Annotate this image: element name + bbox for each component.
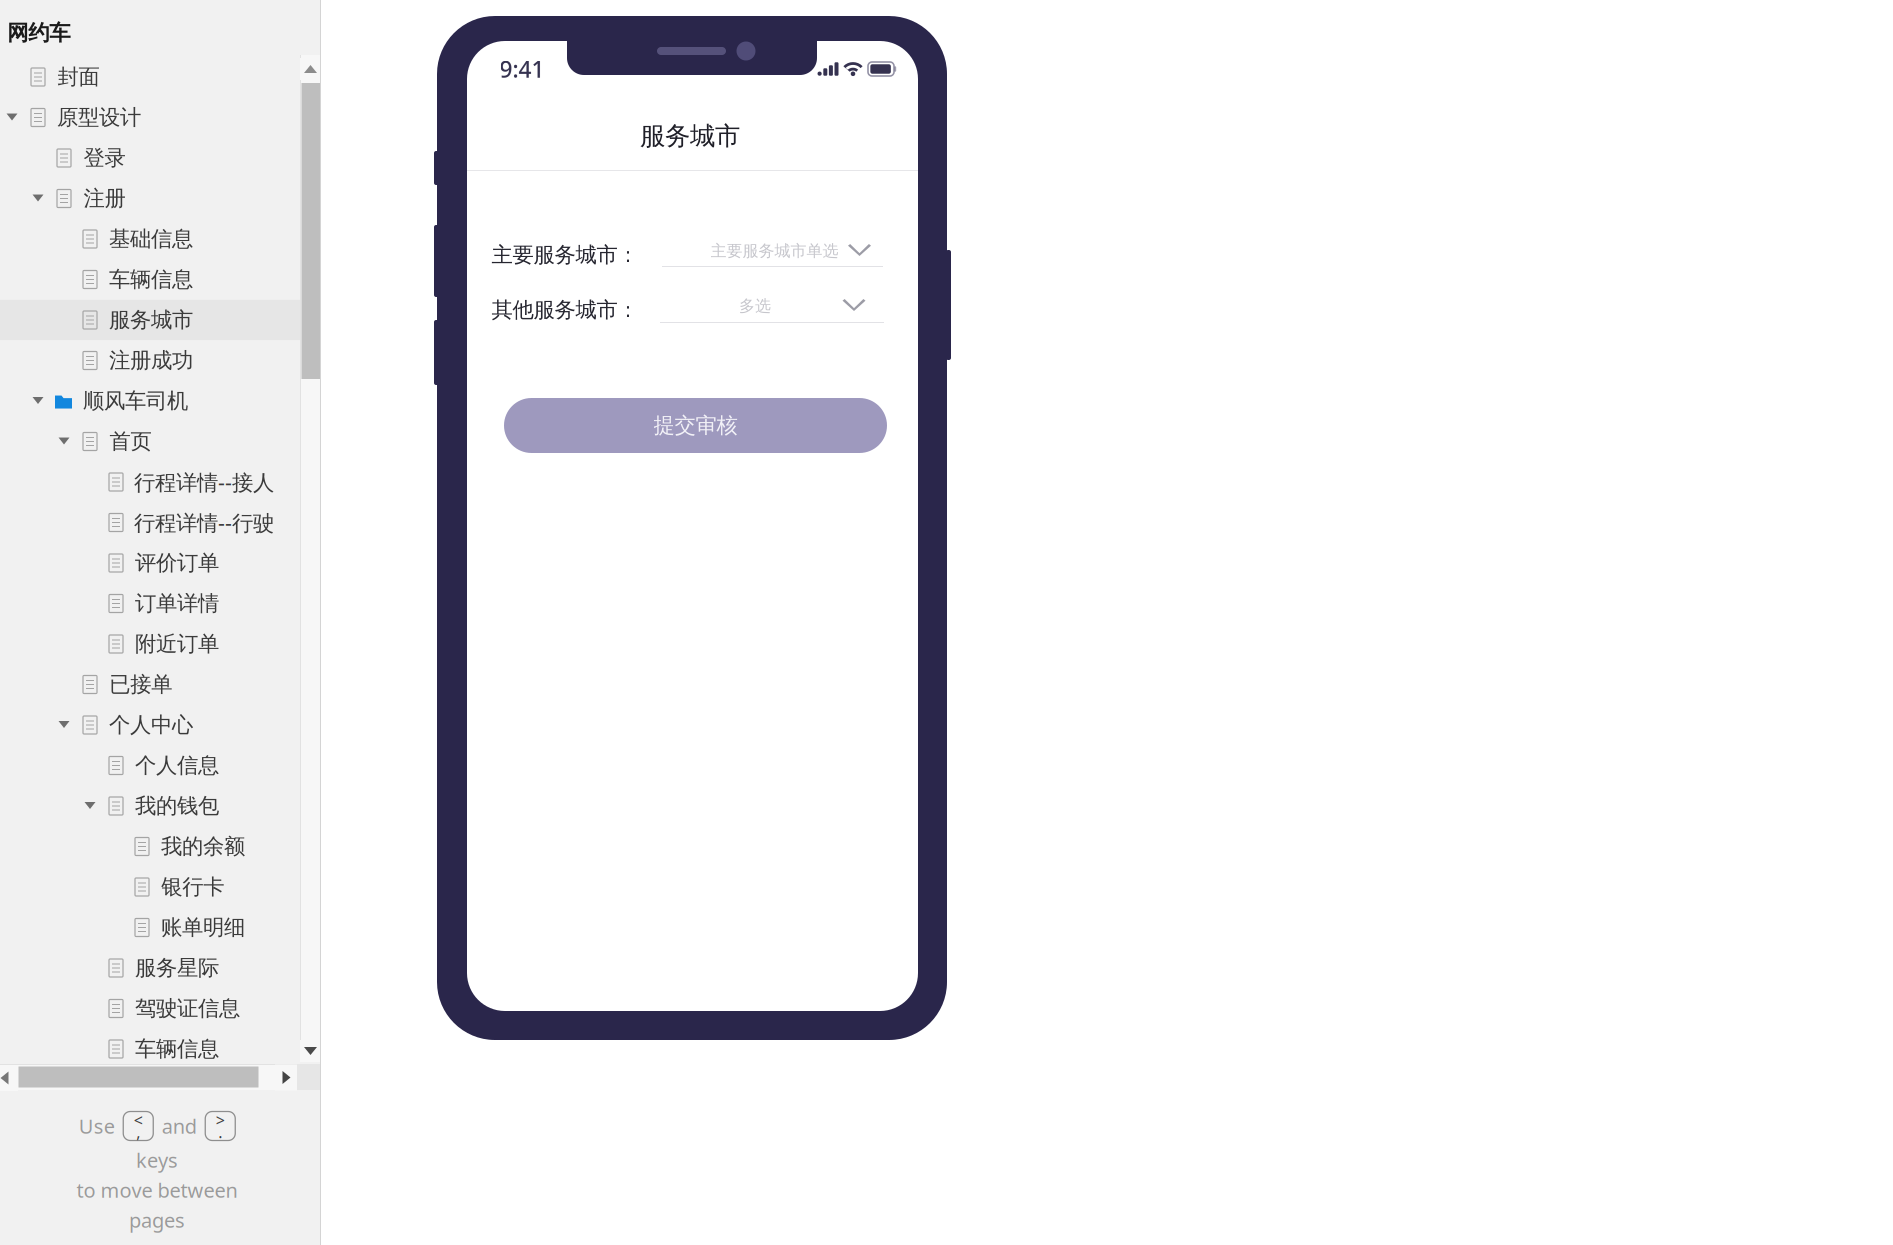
staticText: 原型设计 (57, 104, 141, 131)
button[interactable]: Scroll right (275, 1064, 297, 1090)
staticText: 服务星际 (135, 955, 219, 981)
staticText: 服务城市 (640, 120, 740, 151)
staticText: 订单详情 (135, 590, 219, 617)
staticText: > (216, 1109, 225, 1131)
staticText: 注册 (84, 185, 126, 212)
staticText: 车辆信息 (109, 266, 193, 293)
button[interactable]: 车辆信息 (0, 1029, 321, 1069)
staticText: 注册成功 (109, 347, 193, 374)
button[interactable]: 服务星际 (0, 948, 321, 988)
button[interactable]: 账单明细 (0, 907, 321, 948)
staticText: 多选 (739, 296, 771, 316)
button[interactable]: 我的钱包 (0, 786, 321, 826)
staticText: 驾驶证信息 (135, 995, 240, 1022)
button[interactable]: 注册 (0, 178, 321, 219)
button[interactable]: 附近订单 (0, 624, 321, 664)
staticText: 附近订单 (135, 631, 219, 657)
staticText: 个人中心 (109, 712, 193, 738)
button[interactable]: 多选 (660, 301, 884, 345)
button[interactable]: 银行卡 (0, 867, 321, 907)
staticText: 主要服务城市： (491, 242, 638, 268)
button[interactable]: Scroll up (300, 58, 321, 80)
button[interactable]: 行程详情--接人 (0, 462, 321, 502)
staticText: to move between (76, 1177, 237, 1203)
button[interactable]: 服务城市 (0, 300, 321, 340)
staticText: 登录 (84, 145, 126, 171)
staticText: pages (129, 1207, 185, 1233)
button[interactable]: 我的余额 (0, 826, 321, 867)
staticText: , (136, 1121, 140, 1143)
button[interactable]: 订单详情 (0, 583, 321, 624)
staticText: 行程详情--行驶 (134, 508, 274, 537)
button[interactable]: 评价订单 (0, 543, 321, 583)
staticText: 评价订单 (135, 550, 219, 576)
staticText: 封面 (58, 64, 100, 90)
staticText: 基础信息 (109, 226, 193, 252)
staticText: 个人信息 (135, 752, 219, 779)
staticText: 主要服务城市单选 (710, 241, 838, 261)
staticText: 网约车 (7, 20, 70, 46)
staticText: 顺风车司机 (83, 388, 188, 414)
button[interactable]: 已接单 (0, 664, 321, 705)
button[interactable]: 驾驶证信息 (0, 988, 321, 1029)
button[interactable]: 顺风车司机 (0, 381, 321, 421)
staticText: 我的钱包 (135, 793, 219, 819)
button[interactable]: 行程详情--行驶 (0, 502, 321, 543)
button[interactable]: 车辆信息 (0, 259, 321, 300)
button[interactable]: 登录 (0, 138, 321, 178)
button[interactable]: 主要服务城市单选 (662, 245, 883, 289)
staticText: 行程详情--接人 (134, 468, 274, 496)
staticText: keys (136, 1147, 178, 1173)
staticText: 服务城市 (109, 307, 193, 333)
staticText: 9:41 (499, 54, 544, 84)
staticText: < (134, 1109, 143, 1131)
button[interactable]: 原型设计 (0, 97, 321, 138)
button[interactable]: 个人信息 (0, 745, 321, 786)
staticText: . (218, 1121, 222, 1143)
staticText: 已接单 (109, 671, 172, 698)
staticText: 账单明细 (161, 914, 245, 941)
staticText: and (162, 1113, 197, 1139)
button[interactable]: 封面 (0, 57, 321, 97)
staticText: 银行卡 (161, 874, 224, 900)
staticText: Use (79, 1113, 115, 1139)
staticText: 首页 (110, 428, 152, 455)
button[interactable]: 注册成功 (0, 340, 321, 381)
staticText: 车辆信息 (135, 1036, 219, 1062)
button[interactable]: 个人中心 (0, 705, 321, 745)
button[interactable]: 提交审核 (504, 398, 887, 453)
staticText: 我的余额 (161, 833, 245, 860)
button[interactable]: 基础信息 (0, 219, 321, 259)
staticText: 其他服务城市： (491, 297, 638, 323)
button[interactable]: Scroll left (0, 1065, 18, 1091)
staticText: 提交审核 (653, 412, 737, 439)
button[interactable]: 首页 (0, 421, 321, 462)
button[interactable]: Scroll down (300, 1040, 321, 1062)
